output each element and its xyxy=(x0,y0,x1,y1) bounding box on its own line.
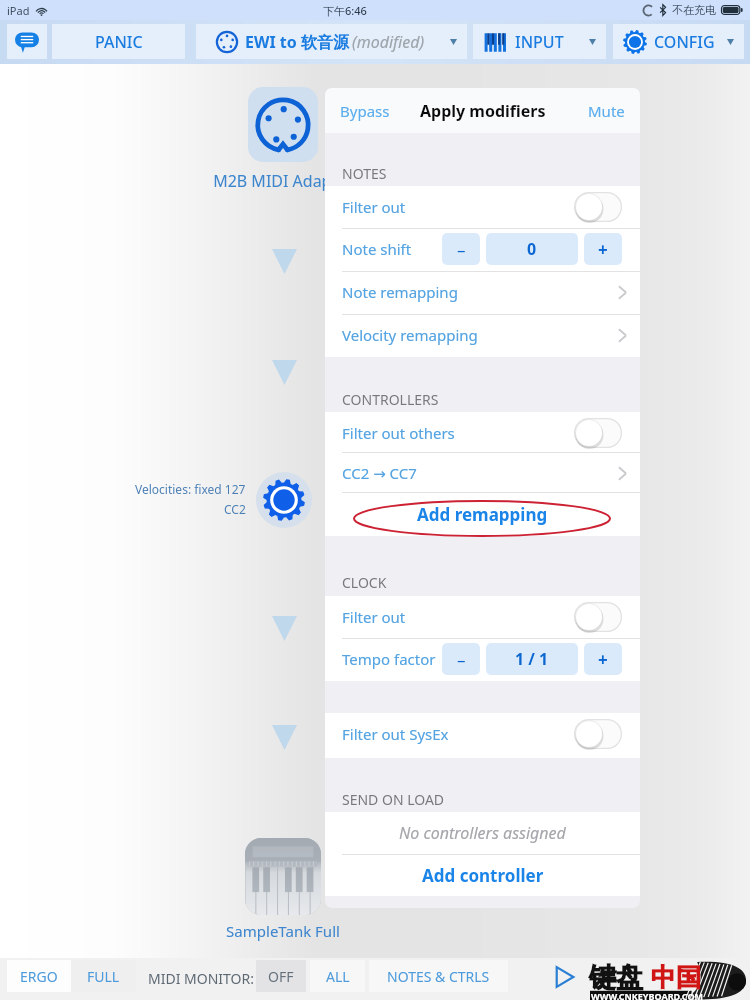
button[interactable]: Decrease xyxy=(442,233,480,265)
staticText: M2B MIDI Adapter xyxy=(183,170,383,192)
button[interactable]: SampleTank Full xyxy=(245,838,321,915)
button[interactable]: NOTES & CTRLS xyxy=(369,960,508,992)
button[interactable]: Mute xyxy=(573,89,640,133)
button[interactable]: Filter out xyxy=(325,186,640,228)
button[interactable]: Add remapping xyxy=(325,492,640,536)
staticText: Filter out xyxy=(342,607,406,627)
staticText: No controllers assigned xyxy=(399,822,566,844)
staticText: EWI to 软音源 xyxy=(245,31,349,53)
staticText: OFF xyxy=(268,967,294,986)
staticText: iPad xyxy=(7,3,30,18)
staticText: CC2 → CC7 xyxy=(342,463,417,483)
other: Play xyxy=(551,964,577,990)
button[interactable]: INPUT xyxy=(473,24,606,59)
staticText: ERGO xyxy=(20,967,58,986)
button[interactable]: EWI to 软音源 xyxy=(196,24,467,59)
button[interactable]: 0 xyxy=(486,233,578,265)
button[interactable]: Filter out xyxy=(325,596,640,638)
staticText: Filter out SysEx xyxy=(342,724,449,744)
staticText: MIDI MONITOR: xyxy=(148,969,254,988)
button[interactable]: Note remapping xyxy=(325,271,640,313)
staticText: CC2 xyxy=(224,501,246,517)
button[interactable]: Increase xyxy=(584,233,622,265)
staticText: – xyxy=(457,648,466,671)
staticText: CONTROLLERS xyxy=(342,390,439,409)
staticText: – xyxy=(457,238,466,261)
button[interactable]: Filter out others xyxy=(325,412,640,454)
staticText: Filter out others xyxy=(342,423,455,443)
staticText: Velocities: fixed 127 xyxy=(135,481,246,497)
staticText: INPUT xyxy=(515,31,564,53)
button[interactable]: OFF xyxy=(256,960,306,992)
staticText: SampleTank Full xyxy=(180,921,386,941)
staticText: Note shift xyxy=(342,239,412,259)
button[interactable]: PANIC xyxy=(52,24,185,59)
staticText: + xyxy=(598,648,608,671)
button[interactable]: Increase xyxy=(584,643,622,675)
staticText: 中国 xyxy=(651,962,701,993)
staticText: Velocity remapping xyxy=(342,325,478,345)
button[interactable]: CONFIG xyxy=(613,24,744,59)
button[interactable]: Add controller xyxy=(325,854,640,896)
staticText: (modified) xyxy=(352,31,425,53)
button[interactable]: Modifier settings xyxy=(256,472,312,528)
staticText: Add controller xyxy=(422,864,544,887)
staticText: 键盘 xyxy=(589,961,643,995)
button[interactable]: Messages xyxy=(7,24,47,59)
staticText: Tempo factor xyxy=(342,649,436,669)
staticText: 0 xyxy=(527,238,537,260)
staticText: Filter out xyxy=(342,197,406,217)
staticText: + xyxy=(598,238,608,261)
button[interactable]: 1 / 1 xyxy=(486,643,578,675)
button[interactable]: CC2 → CC7 xyxy=(325,452,640,494)
button[interactable]: ERGO xyxy=(7,960,71,992)
button[interactable]: ALL xyxy=(310,960,365,992)
staticText: Bypass xyxy=(340,101,390,121)
staticText: CLOCK xyxy=(342,573,387,592)
staticText: SEND ON LOAD xyxy=(342,790,445,809)
staticText: WWW.CNKEYBOARD.COM xyxy=(591,990,704,1000)
staticText: 下午6:46 xyxy=(323,3,367,18)
staticText: FULL xyxy=(87,967,120,986)
button[interactable]: Decrease xyxy=(442,643,480,675)
staticText: CONFIG xyxy=(654,31,715,53)
staticText: NOTES & CTRLS xyxy=(387,967,490,986)
staticText: 1 / 1 xyxy=(515,648,549,670)
button[interactable]: Filter out SysEx xyxy=(325,713,640,755)
button[interactable]: Velocity remapping xyxy=(325,314,640,356)
staticText: PANIC xyxy=(95,31,143,53)
staticText: Mute xyxy=(588,101,625,121)
button[interactable]: Bypass xyxy=(325,89,405,133)
button[interactable]: FULL xyxy=(71,960,136,992)
staticText: NOTES xyxy=(342,164,387,183)
staticText: 不在充电 xyxy=(672,3,716,17)
staticText: Apply modifiers xyxy=(420,100,546,122)
staticText: Add remapping xyxy=(417,503,548,526)
staticText: ALL xyxy=(326,967,350,986)
staticText: Note remapping xyxy=(342,282,458,302)
button[interactable]: M2B MIDI Adapter xyxy=(248,87,318,162)
